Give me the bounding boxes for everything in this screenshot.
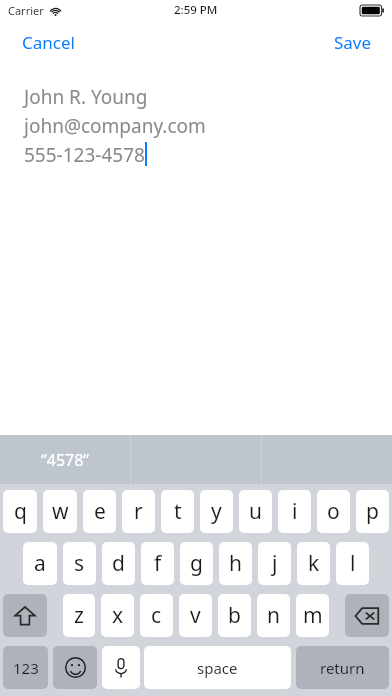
button[interactable]: s xyxy=(63,542,96,585)
staticText: k xyxy=(308,549,320,578)
button[interactable]: f xyxy=(141,542,174,585)
staticText: space xyxy=(197,658,238,678)
staticText: z xyxy=(74,601,84,630)
staticText: h xyxy=(229,549,242,578)
staticText: 555-123-4578 xyxy=(24,142,145,168)
staticText: m xyxy=(303,601,323,630)
staticText: x xyxy=(112,601,124,630)
button[interactable]: Shift xyxy=(3,594,47,637)
button[interactable]: John R. Young xyxy=(24,84,392,168)
button[interactable]: b xyxy=(218,594,251,637)
staticText: Cancel xyxy=(22,31,75,54)
button[interactable]: m xyxy=(296,594,329,637)
button[interactable]: 123 xyxy=(3,646,48,689)
button[interactable]: Dictation xyxy=(102,646,140,689)
button[interactable]: y xyxy=(200,490,233,533)
staticText: l xyxy=(350,549,356,578)
button[interactable]: q xyxy=(3,490,37,533)
button[interactable]: n xyxy=(257,594,290,637)
button[interactable]: Emoji xyxy=(53,646,97,689)
staticText: d xyxy=(112,549,125,578)
button[interactable]: t xyxy=(161,490,194,533)
staticText: Carrier xyxy=(8,3,44,18)
staticText: y xyxy=(211,497,222,526)
staticText: i xyxy=(292,497,298,526)
staticText: e xyxy=(94,497,106,526)
button[interactable]: j xyxy=(258,542,291,585)
staticText: 2:59 PM xyxy=(174,2,218,18)
button[interactable]: v xyxy=(179,594,212,637)
staticText: Save xyxy=(334,31,372,54)
staticText: f xyxy=(154,549,162,578)
staticText: b xyxy=(228,601,241,630)
staticText: john@company.com xyxy=(24,113,206,139)
button[interactable]: o xyxy=(317,490,350,533)
staticText: “4578” xyxy=(41,449,90,471)
staticText: o xyxy=(327,497,340,526)
button[interactable]: e xyxy=(83,490,116,533)
button[interactable]: k xyxy=(297,542,330,585)
button[interactable]: h xyxy=(219,542,252,585)
button[interactable]: u xyxy=(239,490,272,533)
staticText: return xyxy=(320,658,365,678)
button[interactable]: z xyxy=(63,594,95,637)
staticText: w xyxy=(52,497,69,526)
button[interactable]: x xyxy=(101,594,134,637)
staticText: a xyxy=(34,549,46,578)
staticText: j xyxy=(272,549,278,578)
button[interactable]: d xyxy=(102,542,135,585)
button[interactable]: p xyxy=(356,490,389,533)
staticText: v xyxy=(190,601,201,630)
button[interactable]: “4578” xyxy=(0,435,130,484)
button[interactable]: c xyxy=(140,594,173,637)
staticText: q xyxy=(14,497,27,526)
staticText: s xyxy=(74,549,85,578)
staticText: r xyxy=(134,497,143,526)
button[interactable]: return xyxy=(296,646,389,689)
staticText: n xyxy=(267,601,280,630)
button[interactable]: Save xyxy=(314,23,392,62)
staticText: u xyxy=(249,497,262,526)
staticText: 123 xyxy=(13,658,39,678)
staticText: t xyxy=(174,497,182,526)
button[interactable]: w xyxy=(43,490,77,533)
staticText: p xyxy=(366,497,379,526)
button[interactable]: space xyxy=(144,646,291,689)
button[interactable]: Backspace xyxy=(345,594,389,637)
button[interactable]: i xyxy=(278,490,311,533)
staticText: John R. Young xyxy=(24,84,148,110)
staticText: c xyxy=(151,601,162,630)
button[interactable]: g xyxy=(180,542,213,585)
button[interactable]: a xyxy=(23,542,57,585)
staticText: g xyxy=(190,549,203,578)
button[interactable]: r xyxy=(122,490,155,533)
button[interactable]: Cancel xyxy=(0,23,97,62)
button[interactable]: l xyxy=(336,542,369,585)
